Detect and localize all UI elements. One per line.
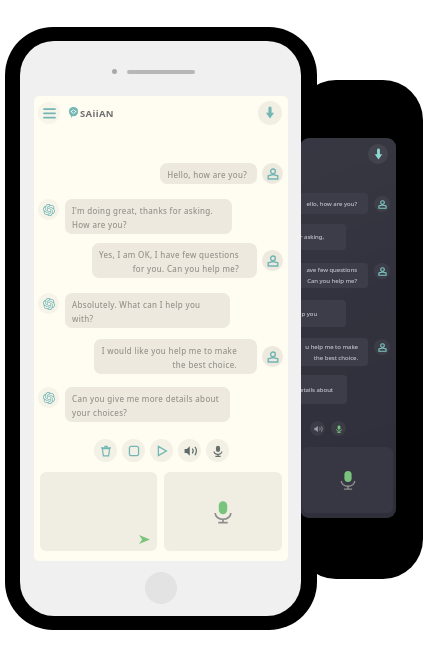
- button[interactable]: Record: [302, 447, 393, 513]
- button[interactable]: Download: [258, 101, 282, 125]
- staticText: r asking,: [300, 233, 325, 241]
- button[interactable]: Play: [150, 439, 173, 462]
- staticText: lp you: [300, 310, 318, 318]
- staticText: SAiiAN: [80, 107, 114, 120]
- staticText: ello, how are you?: [306, 200, 357, 208]
- button[interactable]: Menu: [38, 102, 60, 124]
- button[interactable]: Sound: [310, 421, 325, 436]
- button[interactable]: Stop: [122, 439, 145, 462]
- staticText: Can you give me more details about your …: [72, 393, 220, 418]
- staticText: u help me to make the best choice.: [305, 343, 358, 362]
- staticText: I'm doing great, thanks for asking. How …: [72, 205, 214, 230]
- staticText: Hello, how are you?: [167, 169, 247, 180]
- staticText: ave few questions Can you help me?: [306, 266, 357, 285]
- button[interactable]: Record: [164, 472, 282, 551]
- button[interactable]: Download: [368, 144, 388, 164]
- button[interactable]: [40, 472, 157, 551]
- staticText: I would like you help me to make the bes…: [101, 345, 237, 370]
- staticText: Yes, I am OK, I have few questions for y…: [99, 249, 239, 274]
- button[interactable]: Delete: [94, 439, 117, 462]
- button[interactable]: Microphone: [331, 421, 346, 436]
- button[interactable]: Home: [145, 572, 177, 604]
- staticText: etails about: [300, 386, 334, 394]
- staticText: Absolutely. What can I help you with?: [72, 299, 201, 324]
- button[interactable]: Microphone: [206, 439, 229, 462]
- button[interactable]: Sound: [178, 439, 201, 462]
